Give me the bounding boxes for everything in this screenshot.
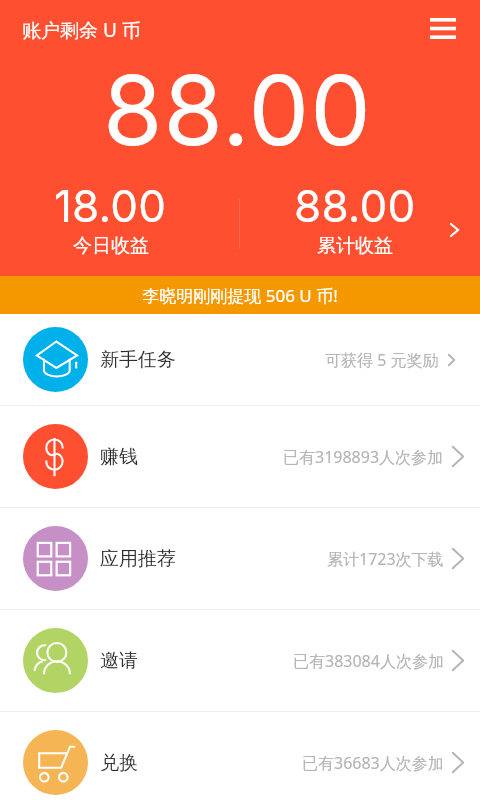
button[interactable]: 应用推荐 — [0, 508, 480, 609]
staticText: 88.00 — [103, 52, 372, 168]
staticText: 兑换 — [100, 751, 138, 775]
staticText: 赚钱 — [100, 445, 138, 469]
staticText: 账户剩余 U 币 — [22, 17, 141, 43]
staticText: 18.00 — [54, 179, 167, 232]
staticText: 88.00 — [294, 179, 416, 232]
button[interactable]: 邀请 — [0, 610, 480, 711]
staticText: 已有36683人次参加 — [302, 752, 444, 774]
button[interactable]: Menu — [419, 4, 467, 52]
button[interactable]: 新手任务 — [0, 314, 480, 405]
staticText: 累计1723次下载 — [327, 548, 444, 570]
staticText: 已有3198893人次参加 — [283, 446, 444, 468]
staticText: 今日收益 — [73, 234, 149, 258]
button[interactable]: 18.00 — [0, 179, 221, 258]
button[interactable]: 兑换 — [0, 712, 480, 800]
staticText: 累计收益 — [317, 234, 393, 258]
staticText: 可获得 5 元奖励 — [325, 349, 439, 371]
staticText: 已有383084人次参加 — [293, 650, 444, 672]
button[interactable]: More — [436, 208, 472, 252]
staticText: 邀请 — [100, 649, 138, 673]
staticText: 应用推荐 — [100, 547, 176, 571]
staticText: 新手任务 — [100, 348, 176, 372]
button[interactable]: 88.00 — [240, 179, 470, 258]
button[interactable]: 李晓明刚刚提现 506 U 币! — [0, 276, 480, 314]
staticText: 李晓明刚刚提现 506 U 币! — [142, 284, 338, 307]
button[interactable]: 赚钱 — [0, 406, 480, 507]
